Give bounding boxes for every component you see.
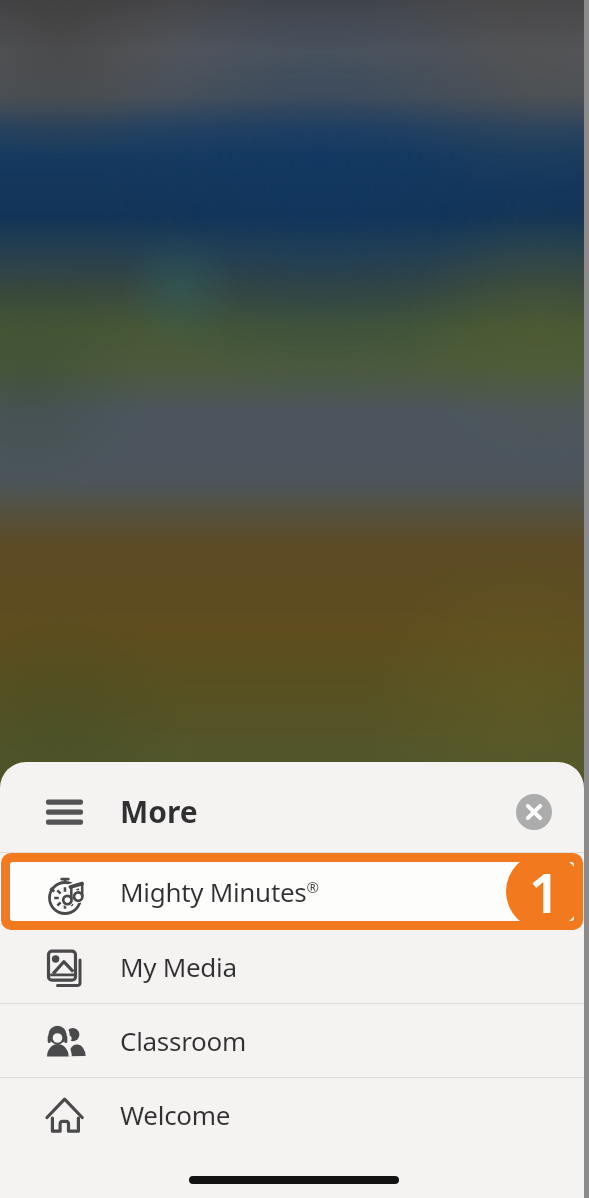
staticText: Mighty Minutes® (120, 874, 319, 909)
button[interactable] (46, 799, 84, 825)
button[interactable]: My Media (0, 930, 584, 1003)
staticText: More (120, 791, 198, 832)
button[interactable] (516, 794, 552, 830)
button[interactable]: Mighty Minutes® (1, 853, 583, 930)
staticText: Classroom (120, 1023, 246, 1058)
staticText: 1 (529, 855, 560, 929)
button[interactable]: Welcome (0, 1078, 584, 1151)
staticText: Welcome (120, 1097, 231, 1132)
button[interactable]: Classroom (0, 1004, 584, 1077)
staticText: My Media (120, 949, 237, 984)
